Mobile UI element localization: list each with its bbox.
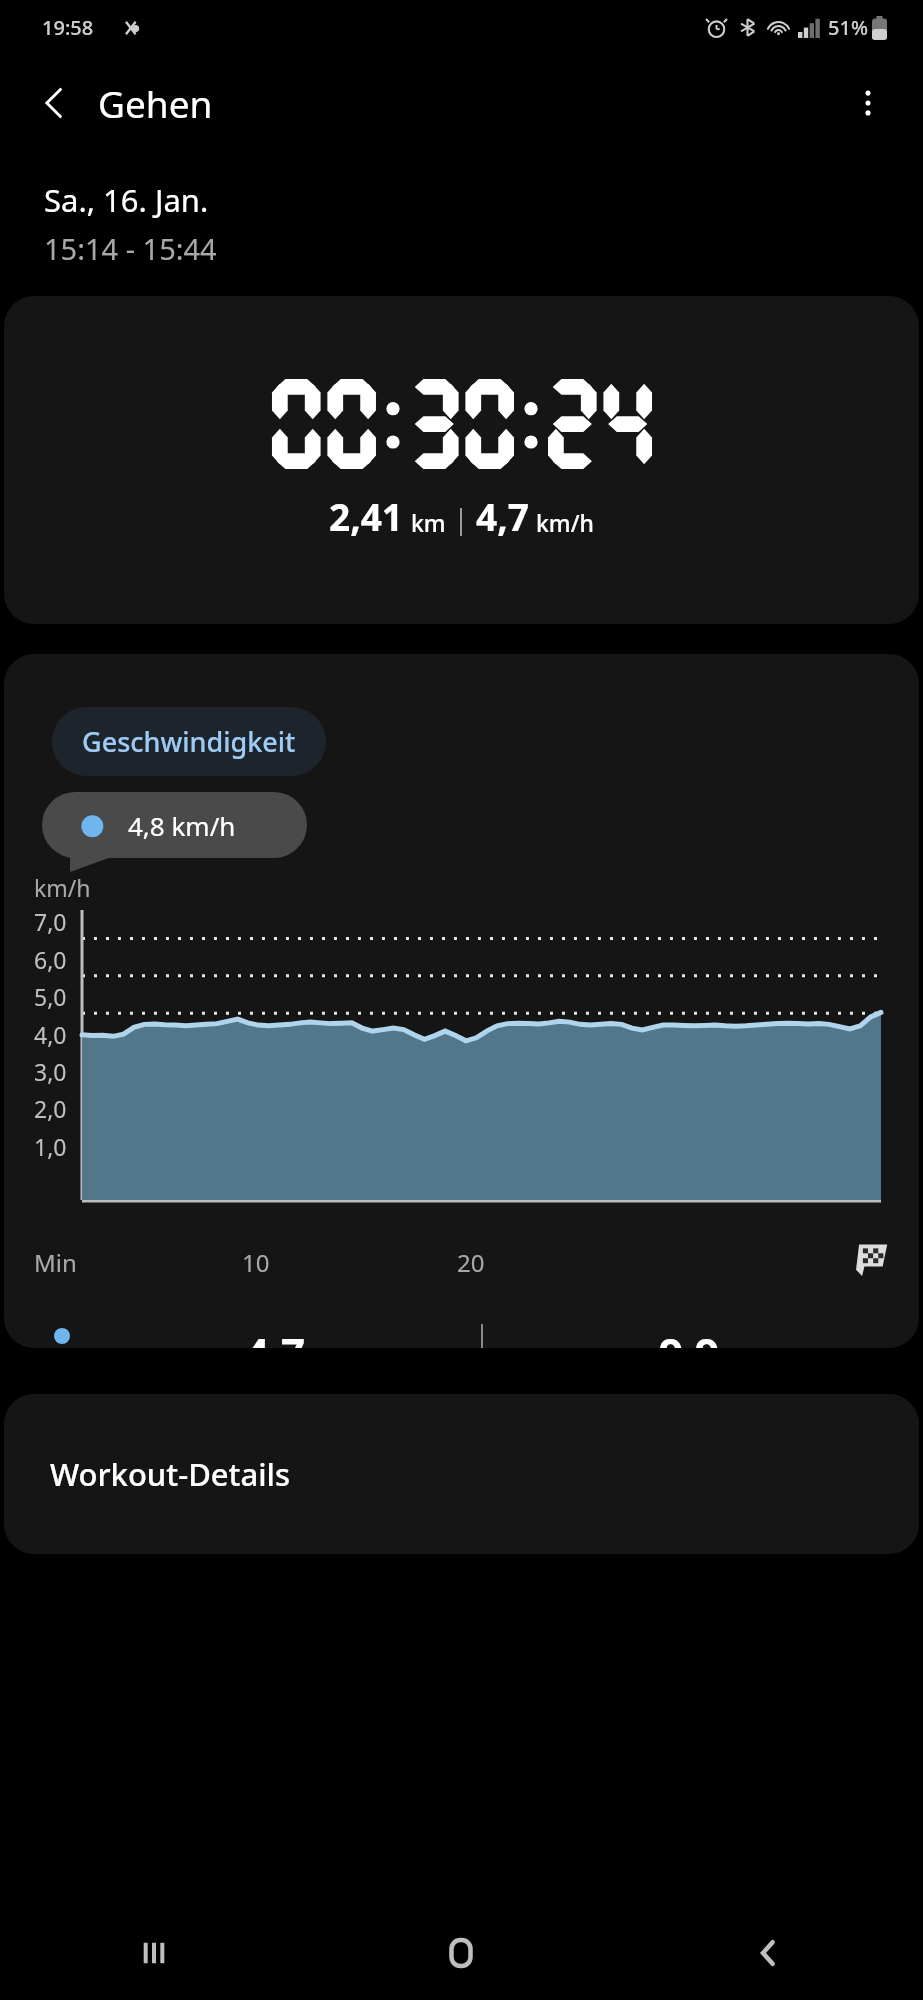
button[interactable]: More options: [835, 70, 901, 136]
staticText: Min: [34, 1246, 77, 1279]
button[interactable]: 2,41: [4, 296, 919, 624]
staticText: 3,0: [34, 1056, 67, 1087]
staticText: km: [411, 507, 446, 538]
button[interactable]: Back: [22, 70, 88, 136]
button[interactable]: Home: [307, 1906, 615, 2000]
staticText: 15:14 - 15:44: [44, 229, 217, 268]
staticText: 7,0: [34, 906, 67, 937]
staticText: 20: [457, 1246, 485, 1279]
staticText: 4,8 km/h: [128, 808, 236, 843]
staticText: Gehen: [98, 78, 213, 128]
staticText: Geschwindigkeit: [82, 723, 296, 760]
staticText: 4,0: [34, 1019, 67, 1050]
button[interactable]: Recents: [0, 1906, 307, 2000]
button[interactable]: Back: [615, 1906, 923, 2000]
staticText: 4,7: [245, 1324, 306, 1348]
staticText: 4,7: [476, 491, 529, 541]
staticText: 19:58: [42, 14, 94, 41]
staticText: 6,0: [34, 944, 67, 975]
staticText: 5,0: [34, 981, 67, 1012]
button[interactable]: Workout-Details: [4, 1394, 919, 1554]
staticText: 2,41: [329, 491, 404, 541]
staticText: 1,0: [34, 1131, 67, 1162]
staticText: km/h: [536, 507, 594, 538]
staticText: km/h: [34, 872, 91, 903]
staticText: Workout-Details: [50, 1453, 291, 1495]
staticText: Sa., 16. Jan.: [44, 179, 209, 221]
staticText: 2,0: [34, 1093, 67, 1124]
staticText: 9,9: [659, 1324, 720, 1348]
staticText: 10: [242, 1246, 270, 1279]
button[interactable]: Geschwindigkeit: [52, 707, 326, 776]
staticText: 51%: [828, 14, 868, 41]
